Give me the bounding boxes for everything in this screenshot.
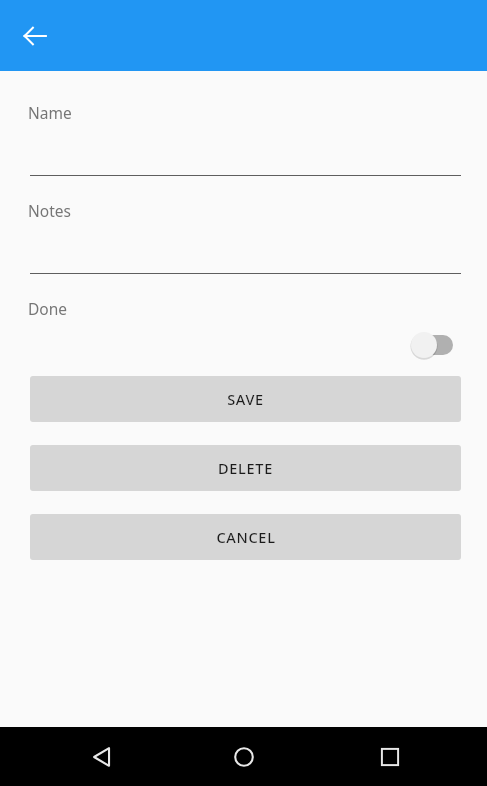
button[interactable]: Back (78, 727, 126, 786)
button[interactable]: Back (11, 12, 59, 60)
button[interactable]: Home (220, 727, 268, 786)
staticText: SAVE (227, 389, 264, 409)
button[interactable]: Recent apps (366, 727, 414, 786)
button[interactable]: Done toggle (404, 326, 462, 364)
staticText: DELETE (218, 458, 273, 478)
button[interactable]: CANCEL (30, 514, 461, 560)
staticText: Done (28, 298, 68, 319)
staticText: CANCEL (216, 527, 276, 547)
button[interactable]: SAVE (30, 376, 461, 422)
button[interactable]: DELETE (30, 445, 461, 491)
staticText: Notes (28, 200, 71, 221)
staticText: Name (28, 102, 72, 123)
